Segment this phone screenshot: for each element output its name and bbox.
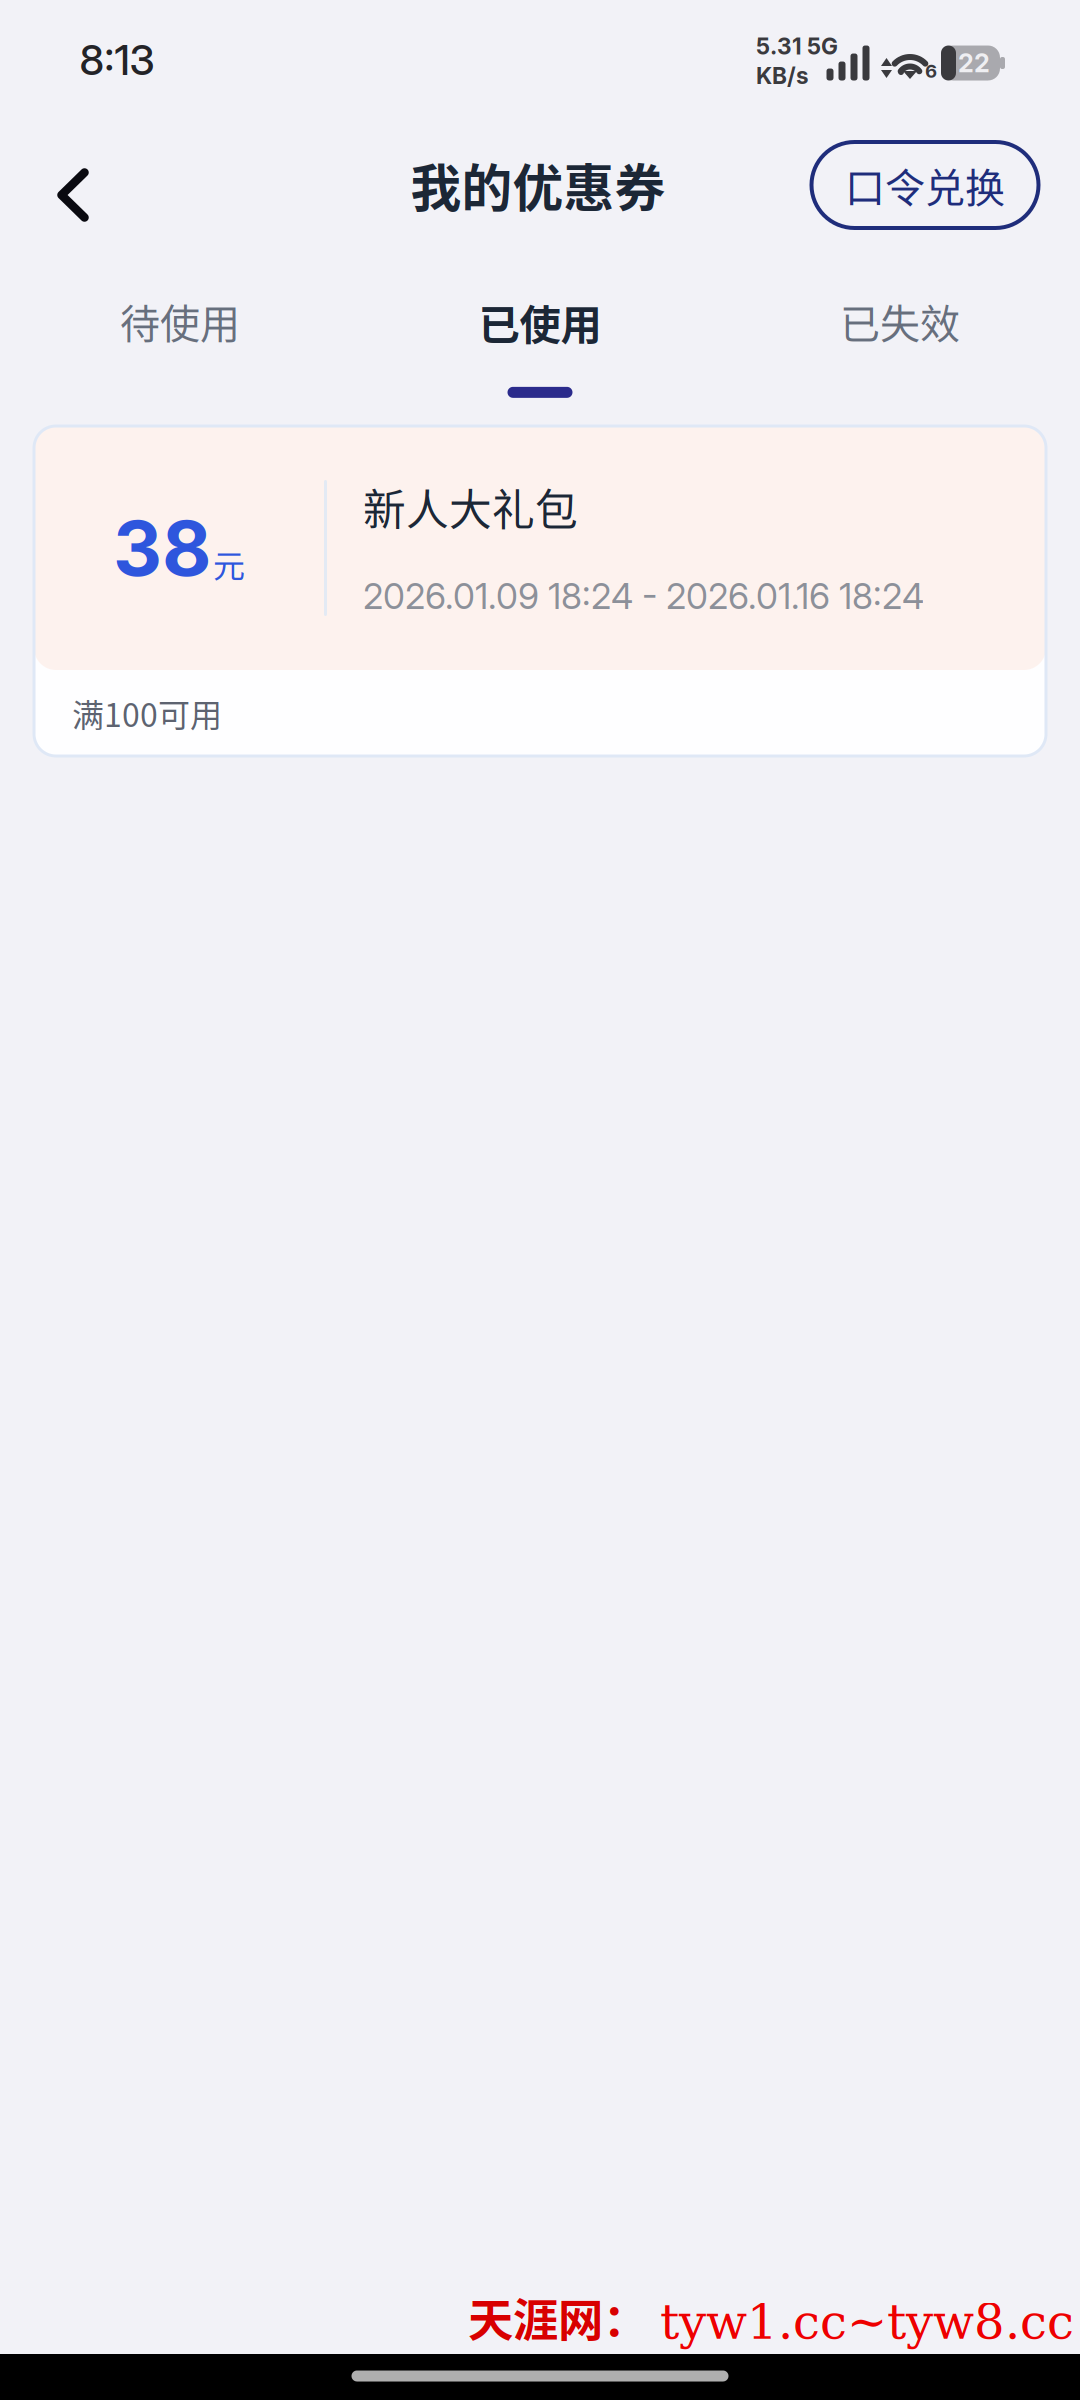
button[interactable]: Back <box>15 135 131 255</box>
button[interactable]: 38 <box>0 426 1080 756</box>
staticText: 6 <box>925 60 937 82</box>
button[interactable]: 口令兑换 <box>811 142 1038 228</box>
staticText: 已使用 <box>478 292 601 352</box>
staticText: 口令兑换 <box>845 156 1005 214</box>
staticText: 元 <box>213 541 245 587</box>
staticText: 我的优惠券 <box>410 148 665 222</box>
button[interactable]: 已使用 <box>360 250 720 410</box>
staticText: tyw1.cc~tyw8.cc <box>660 2294 1074 2350</box>
staticText: 已失效 <box>840 292 960 350</box>
staticText: KB/s <box>756 62 809 89</box>
staticText: 待使用 <box>120 292 240 350</box>
staticText: 天涯网： <box>468 2284 648 2350</box>
staticText: 满100可用 <box>72 690 222 736</box>
button[interactable]: 待使用 <box>0 250 360 410</box>
staticText: 2026.01.09 18:24 - 2026.01.16 18:24 <box>363 575 924 618</box>
staticText: 38 <box>113 502 211 594</box>
staticText: 22 <box>958 48 990 78</box>
staticText: 新人大礼包 <box>363 476 578 538</box>
button[interactable]: 已失效 <box>720 250 1080 410</box>
staticText: 8:13 <box>79 35 154 85</box>
staticText: 5.31 5G <box>756 33 838 60</box>
